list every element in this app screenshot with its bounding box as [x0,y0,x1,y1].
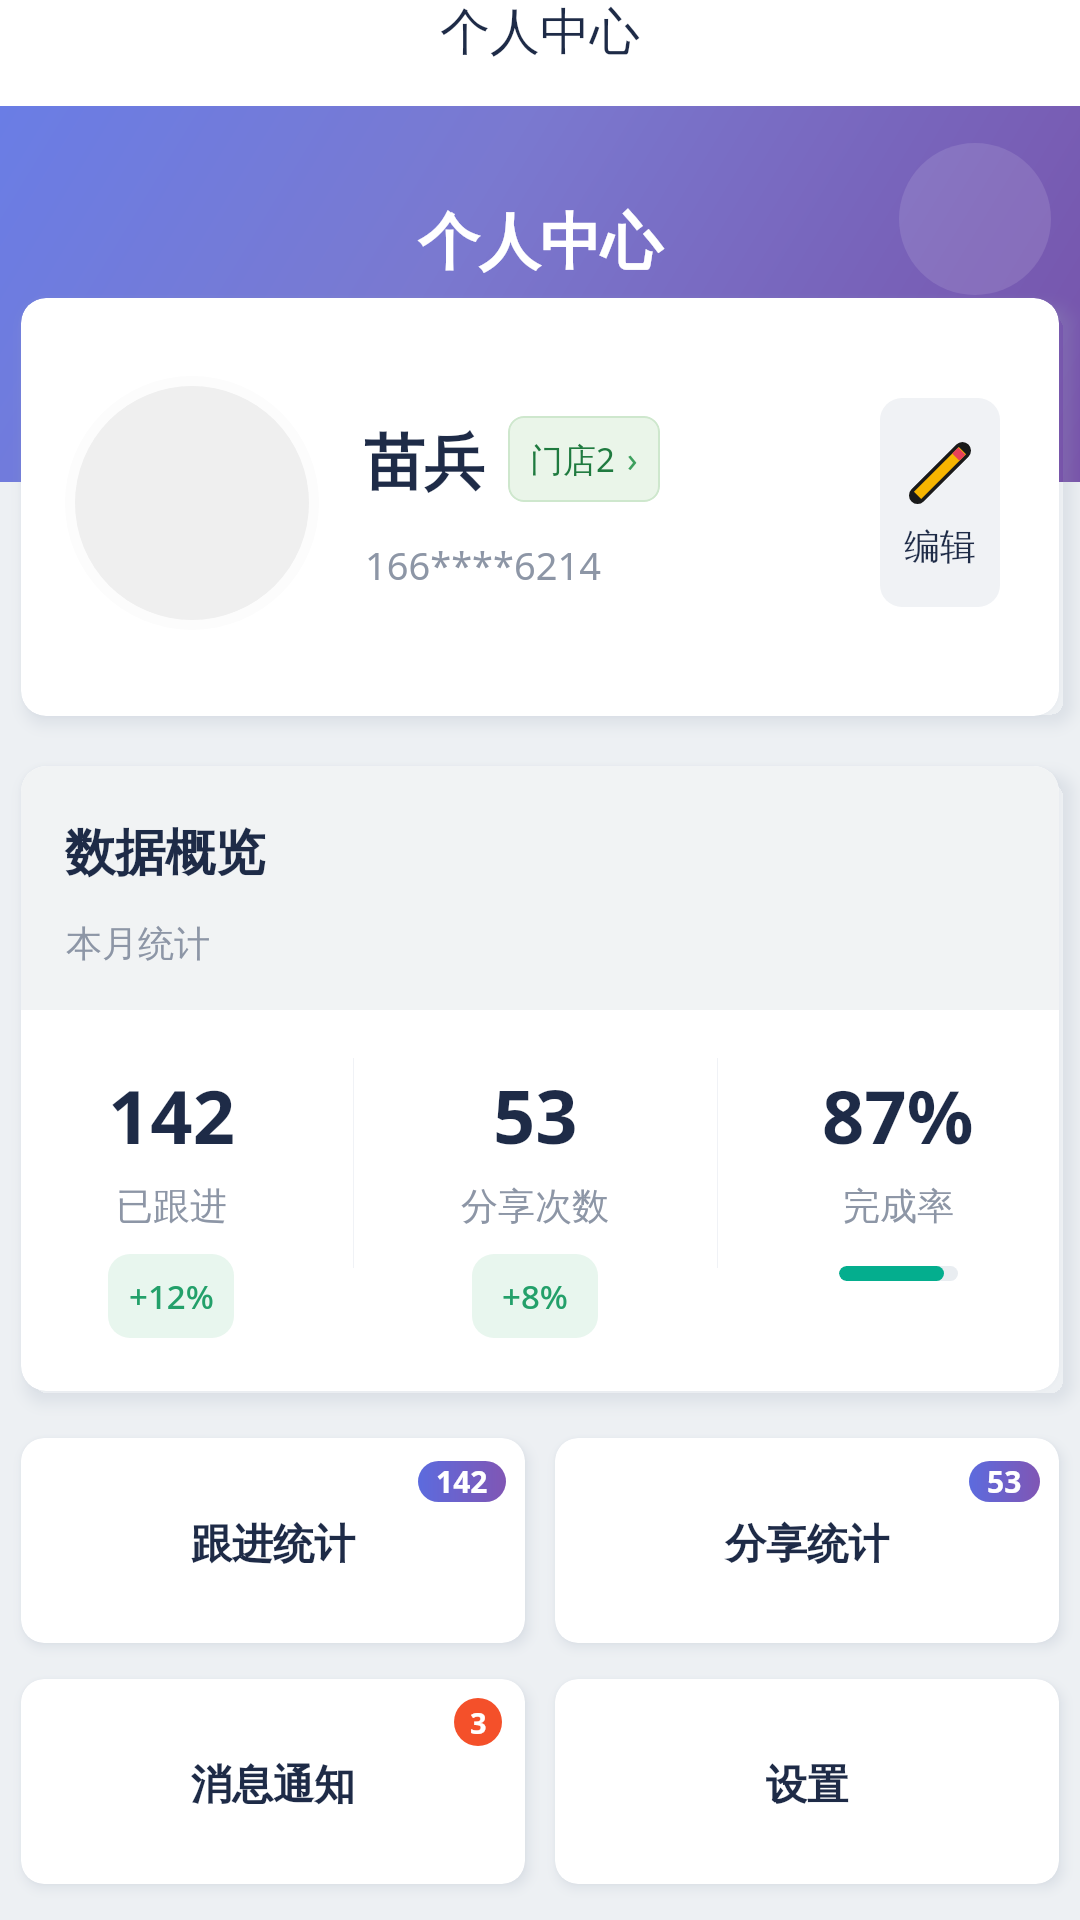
staticText: › [627,436,638,482]
staticText: 苗兵 [364,425,484,501]
staticText: 消息通知 [191,1760,355,1812]
button[interactable]: 苗兵 [21,298,1059,716]
staticText: 个人中心 [440,1,640,64]
button[interactable]: 分享统计 [555,1438,1059,1643]
staticText: 本月统计 [66,921,210,966]
staticText: 166****6214 [365,539,601,591]
staticText: 142 [436,1461,488,1502]
staticText: 门店2 [530,437,615,482]
staticText: 53 [493,1065,578,1166]
button[interactable]: 87% [748,1010,1048,1391]
button[interactable]: 142 [21,1010,321,1391]
button[interactable]: 消息通知 [21,1679,525,1884]
staticText: 跟进统计 [191,1519,355,1571]
staticText: 分享统计 [725,1519,889,1571]
staticText: 已跟进 [116,1183,227,1230]
staticText: 分享次数 [461,1183,609,1230]
staticText: 53 [987,1461,1022,1502]
staticText: 完成率 [843,1183,954,1230]
button[interactable]: 门店2 [508,416,660,502]
staticText: +8% [502,1274,568,1319]
staticText: 142 [108,1065,235,1166]
button[interactable]: 设置 [555,1679,1059,1884]
staticText: +12% [129,1274,214,1319]
staticText: 数据概览 [65,822,265,885]
button[interactable]: 编辑 [880,398,1000,607]
button[interactable]: 53 [385,1010,685,1391]
staticText: 87% [822,1065,974,1166]
staticText: 编辑 [904,524,976,569]
button[interactable]: 跟进统计 [21,1438,525,1643]
staticText: 个人中心 [418,204,662,281]
staticText: 设置 [766,1760,848,1812]
staticText: 3 [470,1703,487,1742]
